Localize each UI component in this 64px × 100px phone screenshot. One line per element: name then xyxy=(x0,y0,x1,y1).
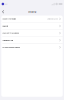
staticText: Shipping xyxy=(28,10,36,13)
staticText: Shipping Profile xyxy=(2,39,13,41)
staticText: United States xyxy=(47,18,58,20)
staticText: Production Rate Option xyxy=(2,46,20,49)
staticText: Custom Track Option xyxy=(2,32,19,34)
button[interactable]: Shipping Profile xyxy=(1,37,63,44)
button[interactable]: Custom Track Option xyxy=(1,30,63,36)
staticText: 9:41 xyxy=(5,3,8,5)
button[interactable]: Production Rate Option xyxy=(1,44,63,51)
staticText: Bulk Edit xyxy=(2,25,8,27)
button[interactable]: Country or Region xyxy=(1,15,63,22)
button[interactable]: Bulk Edit xyxy=(1,23,63,29)
button[interactable]: Back xyxy=(0,8,7,15)
staticText: Country or Region xyxy=(2,18,16,20)
